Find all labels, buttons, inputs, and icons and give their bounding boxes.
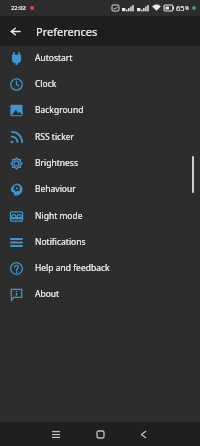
staticText: 65 [176, 3, 185, 13]
staticText: Background [35, 104, 84, 116]
staticText: Notifications [35, 236, 86, 248]
button[interactable]: Background [0, 97, 200, 123]
button[interactable]: RSS ticker [0, 124, 200, 150]
button[interactable]: Notifications [0, 229, 200, 255]
button[interactable]: Brightness [0, 150, 200, 176]
staticText: RSS ticker [35, 131, 75, 143]
staticText: Help and feedback [35, 262, 110, 274]
button[interactable]: Behaviour [0, 176, 200, 202]
staticText: Preferences [36, 24, 98, 39]
staticText: Night mode [35, 210, 83, 222]
staticText: Brightness [35, 157, 78, 169]
button[interactable]: Recent apps [45, 423, 67, 445]
staticText: % [185, 5, 190, 12]
button[interactable]: Help and feedback [0, 255, 200, 281]
staticText: Clock [35, 78, 57, 90]
staticText: Behaviour [35, 183, 76, 195]
staticText: About [35, 288, 60, 300]
button[interactable]: Back [132, 423, 154, 445]
button[interactable]: Clock [0, 71, 200, 97]
button[interactable]: About [0, 281, 200, 307]
staticText: Autostart [35, 52, 73, 64]
button[interactable]: Home [89, 423, 111, 445]
staticText: 22:02 [11, 4, 26, 12]
button[interactable]: Autostart [0, 45, 200, 71]
button[interactable]: Back [0, 16, 30, 46]
button[interactable]: Night mode [0, 203, 200, 229]
